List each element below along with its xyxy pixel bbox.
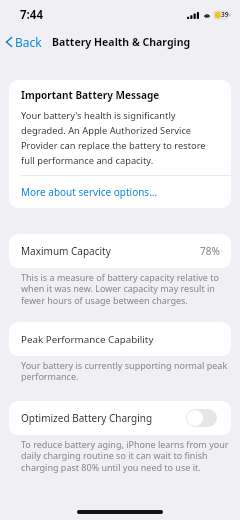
button[interactable]: Back — [0, 30, 48, 54]
staticText: 78% — [200, 244, 220, 258]
button[interactable]: Optimized Battery Charging — [9, 401, 231, 435]
staticText: Battery Health & Charging — [52, 35, 191, 49]
staticText: 39 — [221, 10, 229, 19]
staticText: Maximum Capacity — [21, 244, 111, 258]
staticText: Your battery's health is significantly d… — [21, 109, 219, 167]
staticText: Optimized Battery Charging — [21, 411, 153, 425]
staticText: This is a measure of battery capacity re… — [21, 271, 229, 307]
staticText: To reduce battery aging, iPhone learns f… — [21, 438, 229, 474]
button[interactable]: More about service options... — [9, 176, 231, 208]
staticText: More about service options... — [21, 185, 158, 199]
staticText: Back — [15, 34, 42, 50]
other: Optimized Battery Charging toggle — [186, 409, 217, 427]
staticText: 7:44 — [20, 7, 43, 23]
staticText: Important Battery Message — [21, 88, 160, 102]
button[interactable]: Peak Performance Capability — [9, 322, 231, 356]
staticText: Peak Performance Capability — [21, 333, 154, 346]
staticText: Your battery is currently supporting nor… — [21, 359, 229, 383]
button[interactable]: Maximum Capacity — [9, 234, 231, 268]
